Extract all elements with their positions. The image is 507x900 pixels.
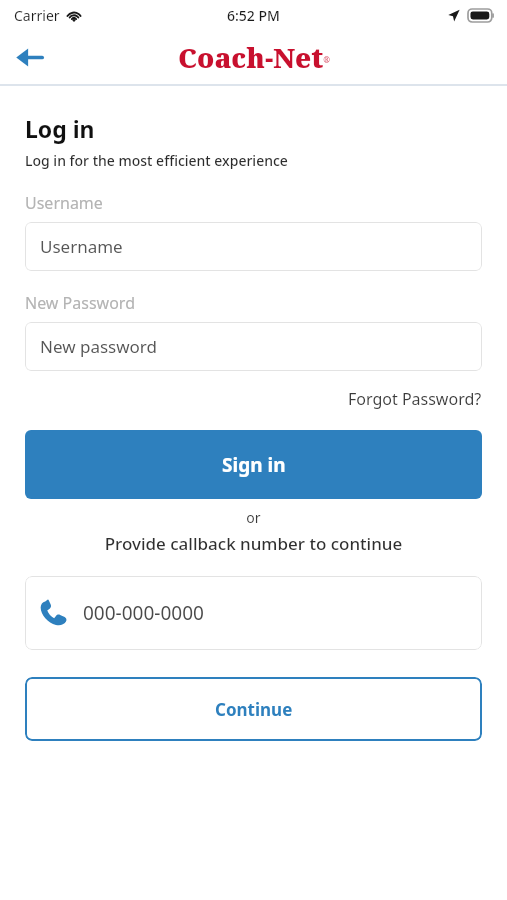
staticText: New Password xyxy=(25,292,135,314)
staticText: Username xyxy=(25,192,103,214)
staticText: Forgot Password? xyxy=(348,388,482,410)
staticText: Carrier xyxy=(14,6,60,25)
button[interactable]: Forgot Password? xyxy=(348,388,482,410)
staticText: Log in xyxy=(25,113,95,144)
staticText: 000-000-0000 xyxy=(83,600,204,626)
button[interactable]: 000-000-0000 xyxy=(25,576,482,650)
staticText: Username xyxy=(40,235,123,258)
button[interactable]: Sign in xyxy=(25,430,482,499)
staticText: Log in for the most efficient experience xyxy=(25,151,288,170)
button[interactable]: New password xyxy=(25,322,482,371)
staticText: Sign in xyxy=(222,452,286,478)
staticText: Coach-Net® xyxy=(178,39,330,76)
staticText: 6:52 PM xyxy=(227,6,280,25)
staticText: Continue xyxy=(215,698,293,721)
staticText: New password xyxy=(40,335,158,358)
staticText: Provide callback number to continue xyxy=(25,532,482,555)
button[interactable]: Back xyxy=(7,35,51,79)
button[interactable]: Continue xyxy=(25,677,482,741)
button[interactable]: Username xyxy=(25,222,482,271)
staticText: or xyxy=(25,508,482,527)
